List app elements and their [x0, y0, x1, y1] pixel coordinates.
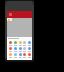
- button[interactable]: Docs: [18, 47, 22, 52]
- button[interactable]: Drive: [13, 47, 17, 52]
- button[interactable]: YouTube: [8, 47, 12, 52]
- button[interactable]: Duo: [18, 53, 22, 58]
- button[interactable]: Calendar: [8, 53, 12, 58]
- button[interactable]: Music: [27, 53, 31, 58]
- button[interactable]: Photos: [18, 41, 22, 46]
- button[interactable]: Menu: [7, 11, 32, 18]
- button[interactable]: Gmail: [8, 41, 12, 46]
- button[interactable]: Chrome: [13, 41, 17, 46]
- button[interactable]: Files: [13, 53, 17, 58]
- button[interactable]: Maps: [27, 41, 31, 46]
- button[interactable]: Keep: [27, 47, 31, 52]
- button[interactable]: News: [22, 53, 26, 58]
- button[interactable]: [7, 18, 12, 21]
- button[interactable]: Play: [22, 41, 26, 46]
- button[interactable]: Meet: [22, 47, 26, 52]
